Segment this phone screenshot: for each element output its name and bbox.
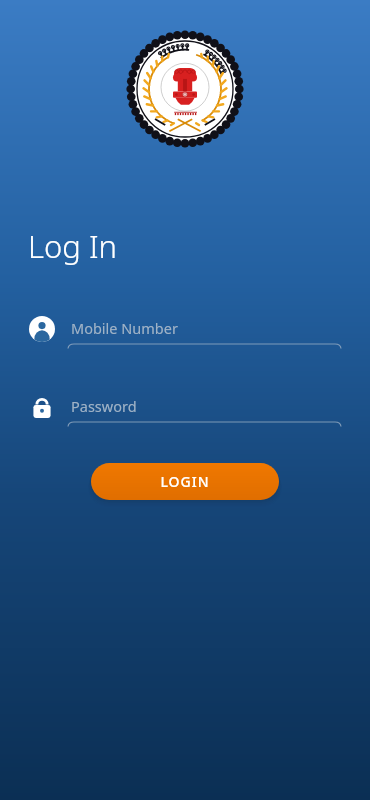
button[interactable]: Password: [68, 388, 341, 432]
staticText: Mobile Number: [71, 318, 178, 338]
other: Password: [29, 394, 55, 420]
button[interactable]: Mobile Number: [68, 310, 341, 354]
other: Account: [29, 316, 55, 342]
staticText: LOGIN: [160, 472, 210, 491]
staticText: Password: [71, 396, 137, 416]
staticText: Log In: [28, 225, 117, 267]
button[interactable]: LOGIN: [91, 463, 279, 500]
